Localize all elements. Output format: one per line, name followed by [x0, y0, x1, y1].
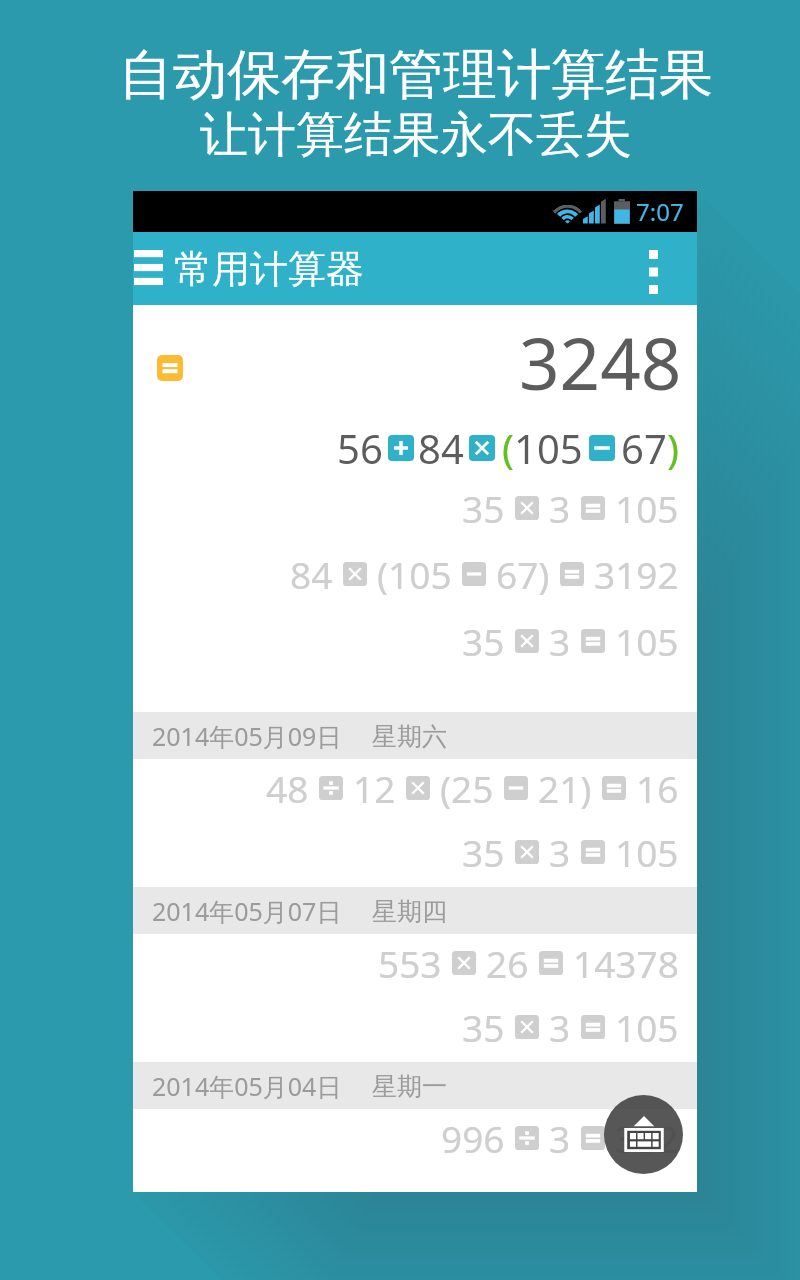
button[interactable]: 35 [133, 823, 697, 887]
staticText: 35 [462, 1002, 505, 1052]
staticText: 2014年05月07日 [152, 894, 342, 928]
staticText: 16 [636, 763, 679, 813]
staticText: (25 [440, 763, 494, 813]
button[interactable]: 35 [133, 610, 697, 677]
staticText: 2014年05月04日 [152, 1069, 342, 1103]
staticText: 3 [549, 483, 571, 533]
staticText: 105 [615, 483, 679, 533]
staticText: 84 [290, 549, 333, 599]
staticText: 996 [441, 1113, 505, 1163]
staticText: 常用计算器 [174, 245, 364, 293]
button[interactable]: 84 [133, 544, 697, 610]
staticText: 3 [549, 616, 571, 666]
button[interactable]: 35 [133, 478, 697, 544]
staticText: 35 [462, 483, 505, 533]
staticText: 35 [462, 827, 505, 877]
staticText: ) [667, 421, 679, 475]
button[interactable]: 2014年05月04日 [133, 1062, 697, 1109]
staticText: 2014年05月09日 [152, 719, 342, 753]
staticText: 7:07 [636, 195, 684, 228]
staticText: 105 [615, 827, 679, 877]
staticText: 105 [514, 421, 583, 475]
staticText: 3192 [594, 549, 679, 599]
staticText: 3 [549, 1002, 571, 1052]
button[interactable]: More options [637, 232, 697, 305]
button[interactable]: 2014年05月09日 [133, 712, 697, 759]
button[interactable]: 35 [133, 998, 697, 1062]
staticText: 让计算结果永不丢失 [16, 105, 800, 165]
staticText: 26 [486, 938, 529, 988]
staticText: ( [502, 421, 514, 475]
button[interactable]: 996 [133, 1109, 697, 1173]
staticText: 星期四 [372, 896, 447, 927]
staticText: 星期六 [372, 721, 447, 752]
staticText: (105 [377, 549, 452, 599]
staticText: 14378 [573, 938, 679, 988]
staticText: 自动保存和管理计算结果 [16, 41, 800, 109]
button[interactable]: 553 [133, 934, 697, 998]
staticText: 21) [538, 763, 592, 813]
staticText: 84 [418, 421, 464, 475]
staticText: 553 [378, 938, 442, 988]
staticText: 67 [621, 421, 667, 475]
button[interactable]: 48 [133, 759, 697, 823]
staticText: 48 [266, 763, 309, 813]
button[interactable]: Menu [133, 232, 173, 305]
staticText: 3 [549, 1113, 571, 1163]
staticText: 星期一 [372, 1071, 447, 1102]
staticText: 12 [353, 763, 396, 813]
staticText: 332 [615, 1113, 679, 1163]
staticText: 67) [496, 549, 550, 599]
staticText: 56 [337, 421, 383, 475]
staticText: 35 [462, 616, 505, 666]
staticText: 105 [615, 616, 679, 666]
staticText: 3 [549, 827, 571, 877]
staticText: 3248 [519, 314, 682, 411]
staticText: 105 [615, 1002, 679, 1052]
button[interactable]: Show keyboard [604, 1095, 683, 1174]
button[interactable]: 2014年05月07日 [133, 887, 697, 934]
